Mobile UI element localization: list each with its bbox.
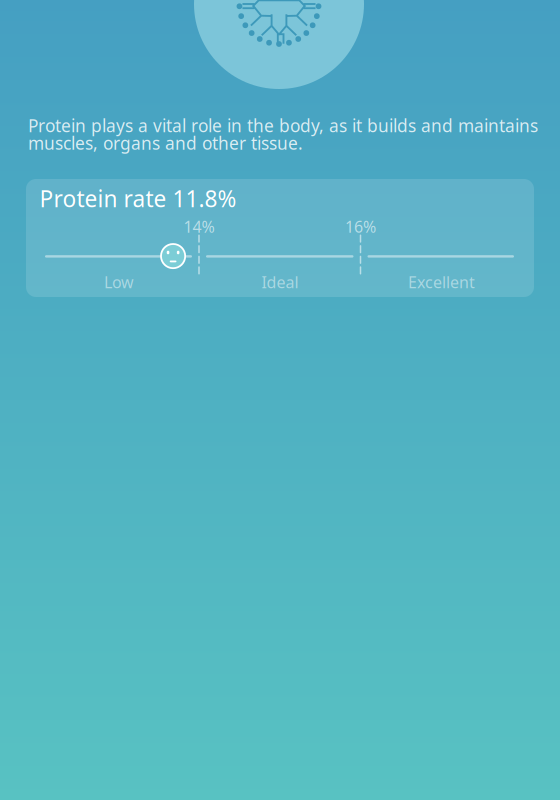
staticText: Low: [104, 271, 134, 293]
staticText: Ideal: [261, 271, 298, 293]
staticText: 14%: [183, 216, 214, 237]
staticText: Protein rate 11.8%: [39, 183, 236, 214]
button[interactable]: Protein rate 11.8%: [26, 179, 534, 297]
staticText: Protein plays a vital role in the body, …: [28, 114, 538, 137]
staticText: Excellent: [408, 271, 475, 293]
staticText: muscles, organs and other tissue.: [28, 131, 303, 154]
staticText: 16%: [345, 216, 376, 237]
